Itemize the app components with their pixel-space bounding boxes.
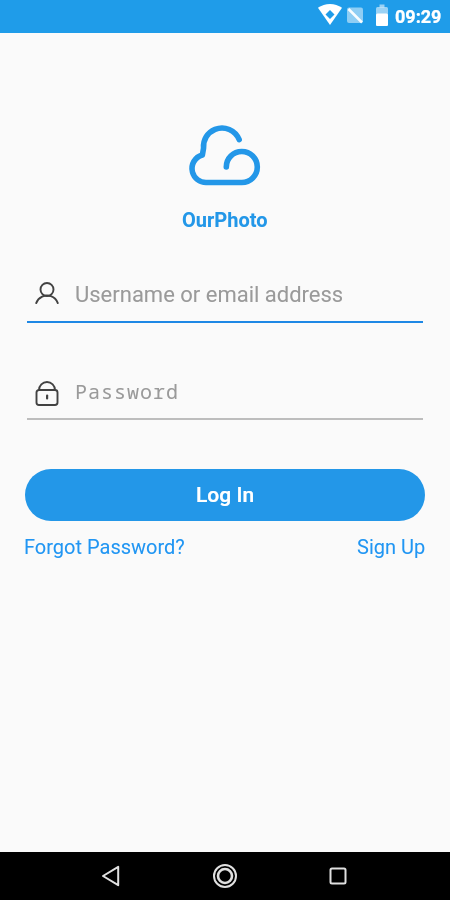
staticText: Log In [196,483,255,508]
staticText: Username or email address [75,282,344,308]
button[interactable]: Sign Up [357,535,426,558]
button[interactable] [201,852,249,900]
button[interactable]: Username or email address [27,281,423,323]
button[interactable]: Password [27,377,423,420]
button[interactable] [88,852,136,900]
button[interactable] [314,852,362,900]
staticText: OurPhoto [182,208,268,231]
staticText: Password [75,378,179,405]
staticText: 09:29 [395,6,442,27]
button[interactable]: Log In [25,469,425,521]
button[interactable]: Forgot Password? [24,535,185,558]
